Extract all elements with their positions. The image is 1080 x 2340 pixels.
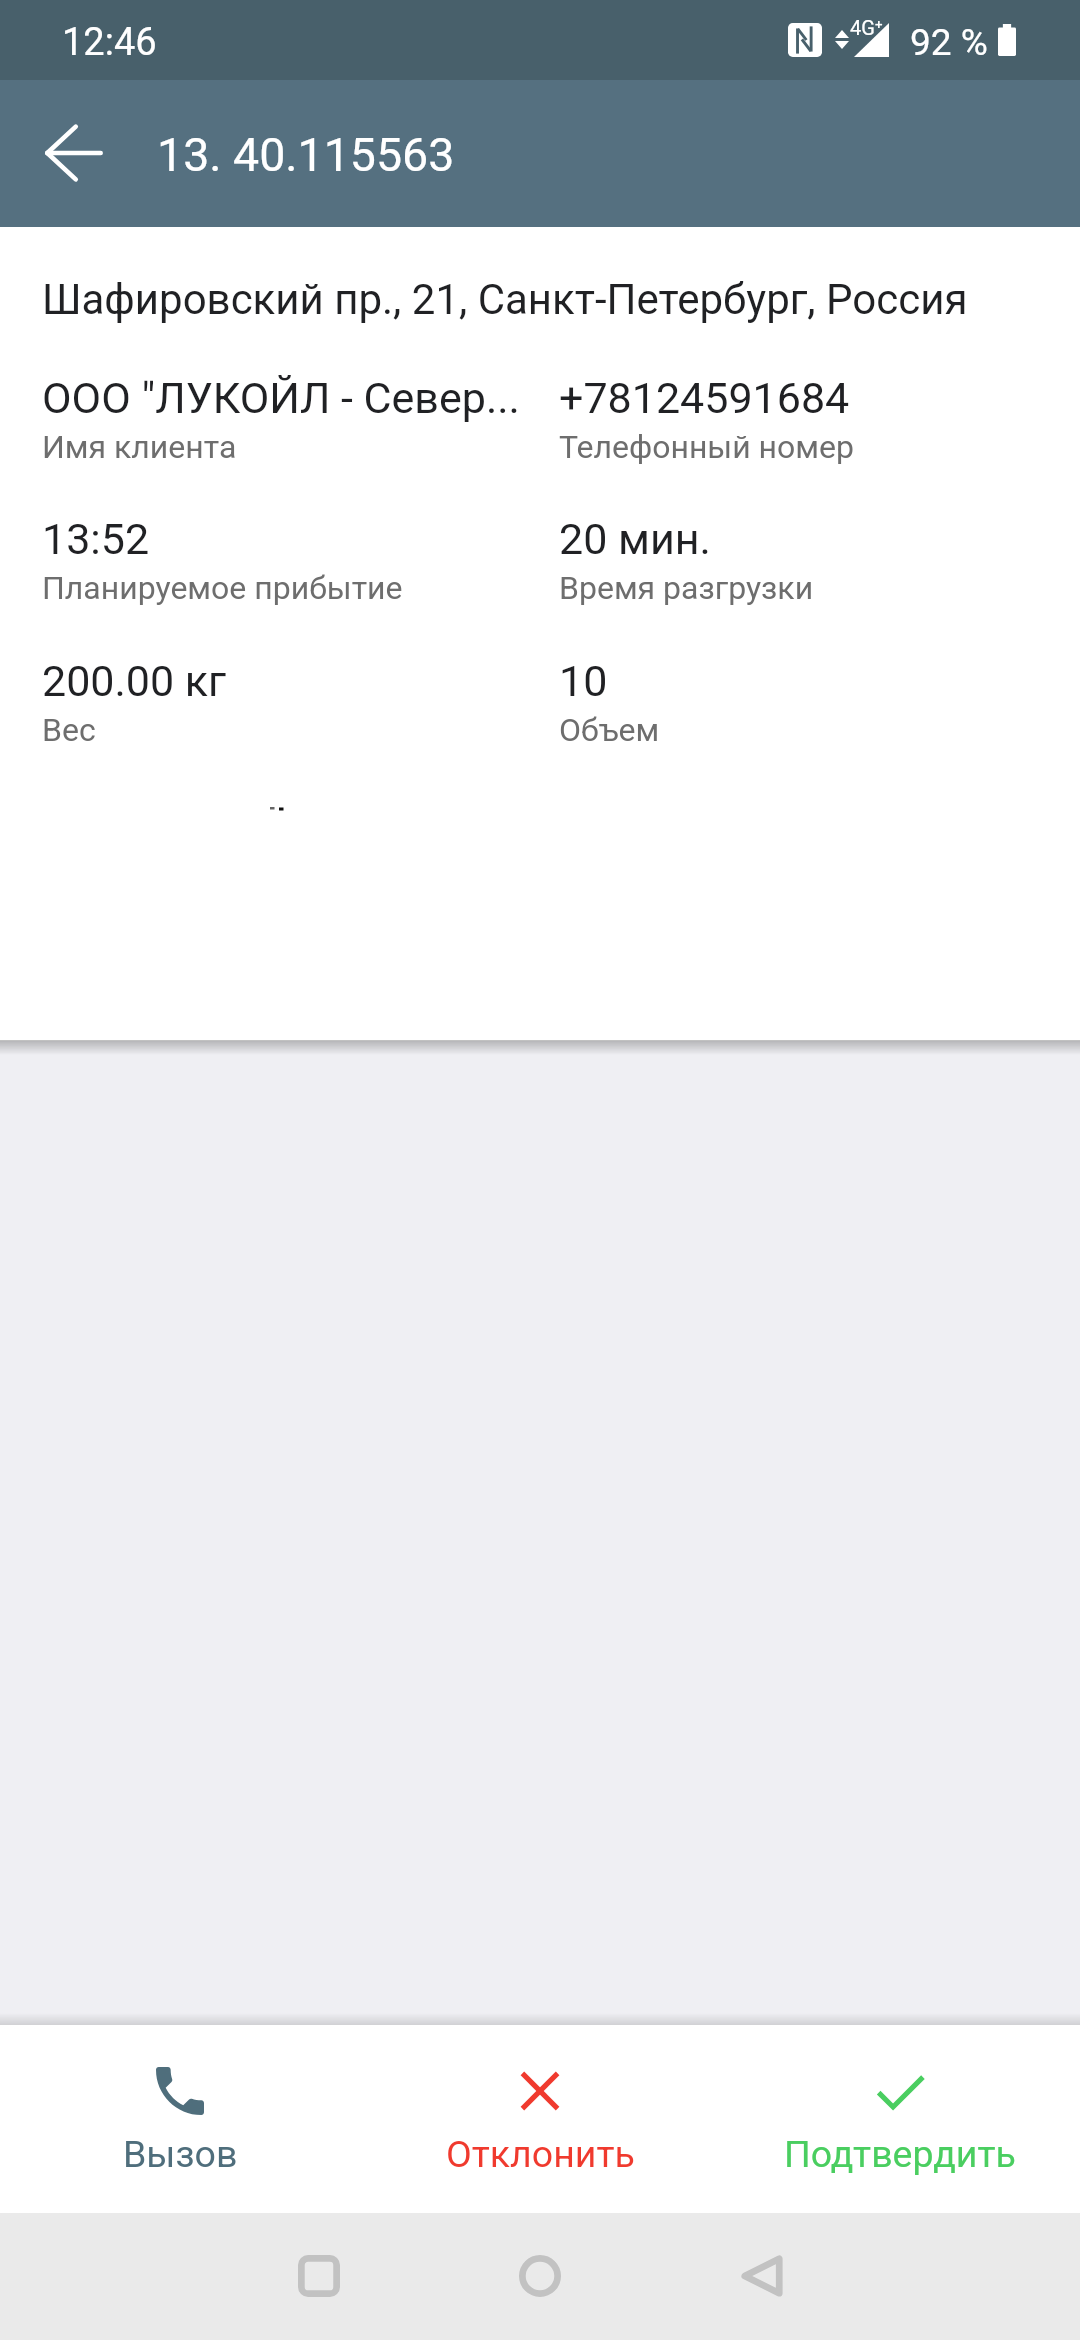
button[interactable]: Подтвердить [720,2025,1080,2213]
staticText: 13. 40.115563 [157,128,455,182]
staticText: ООО "ЛУКОЙЛ - Север... [42,373,520,423]
staticText: Шафировский пр., 21, Санкт-Петербург, Ро… [42,275,968,324]
staticText: Объем [559,711,660,749]
staticText: Телефонный номер [559,428,854,466]
button[interactable]: Recents [264,2221,374,2331]
button[interactable]: Back [21,100,127,206]
staticText: Планируемое прибытие [42,569,403,607]
staticText: 20 мин. [559,514,711,564]
staticText: 200.00 кг [42,656,227,706]
staticText: 12:46 [62,20,157,65]
button[interactable]: Back [707,2221,817,2331]
button[interactable]: Home [485,2221,595,2331]
staticText: Отклонить [446,2132,635,2176]
staticText: 92 % [910,21,988,64]
staticText: Вес [42,711,96,749]
button[interactable]: Вызов [0,2025,360,2213]
staticText: Подтвердить [784,2132,1016,2176]
button[interactable]: Отклонить [360,2025,720,2213]
staticText: +78124591684 [559,373,850,423]
staticText: 4G⁺ [850,16,883,39]
staticText: Имя клиента [42,428,237,466]
staticText: Вызов [123,2132,238,2176]
staticText: Время разгрузки [559,569,814,607]
staticText: 13:52 [42,514,150,564]
staticText: 10 [559,656,608,706]
